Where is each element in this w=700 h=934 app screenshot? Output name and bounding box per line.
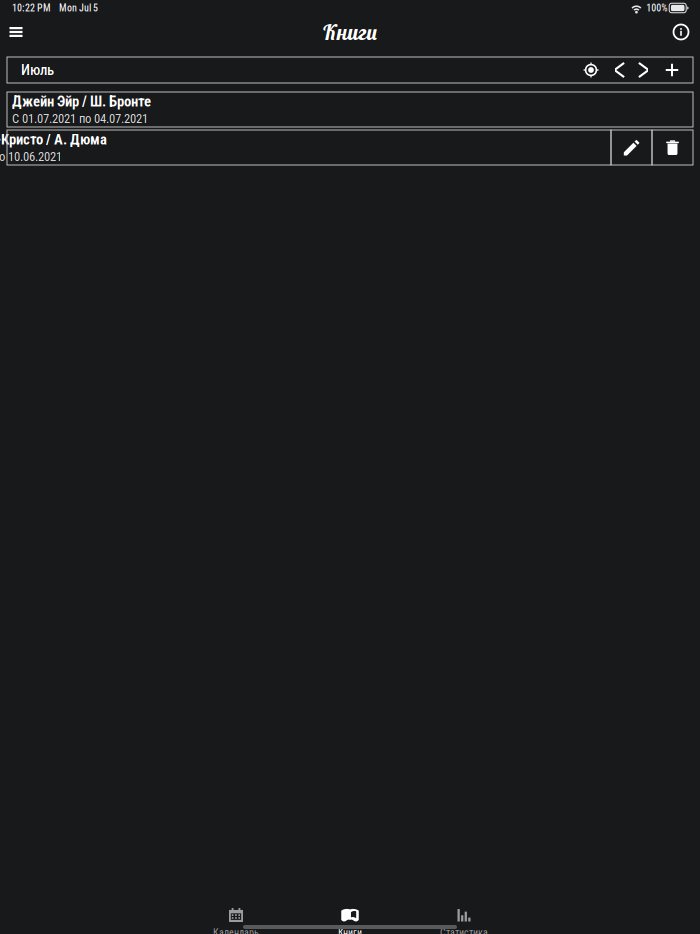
button[interactable]: Menu: [0, 17, 32, 47]
staticText: Книги: [323, 19, 377, 45]
staticText: С 01.07.2021 по 04.07.2021: [12, 111, 148, 126]
staticText: 10:22 PM: [12, 2, 51, 14]
staticText: Mon Jul 5: [59, 2, 98, 14]
button[interactable]: Граф Монте-Кристо / А. Дюма: [7, 130, 611, 165]
staticText: 100%: [646, 2, 667, 14]
staticText: С 01.06.2021 по 10.06.2021: [0, 149, 62, 164]
staticText: Книги: [338, 927, 362, 934]
button[interactable]: Статистика: [407, 906, 521, 934]
staticText: Календарь: [213, 927, 259, 934]
staticText: Статистика: [440, 927, 488, 934]
button[interactable]: Книги: [293, 906, 407, 934]
button[interactable]: Джейн Эйр / Ш. Бронте: [7, 92, 693, 127]
staticText: Джейн Эйр / Ш. Бронте: [12, 93, 151, 110]
button[interactable]: Edit: [611, 130, 652, 165]
button[interactable]: Previous month: [604, 58, 631, 82]
staticText: Июль: [21, 61, 54, 79]
button[interactable]: Info: [666, 17, 696, 47]
button[interactable]: Календарь: [179, 906, 293, 934]
staticText: Граф Монте-Кристо / А. Дюма: [0, 131, 107, 148]
button[interactable]: Delete: [652, 130, 693, 165]
button[interactable]: Current month: [577, 58, 604, 82]
button[interactable]: Add book: [658, 58, 685, 82]
button[interactable]: Next month: [631, 58, 658, 82]
